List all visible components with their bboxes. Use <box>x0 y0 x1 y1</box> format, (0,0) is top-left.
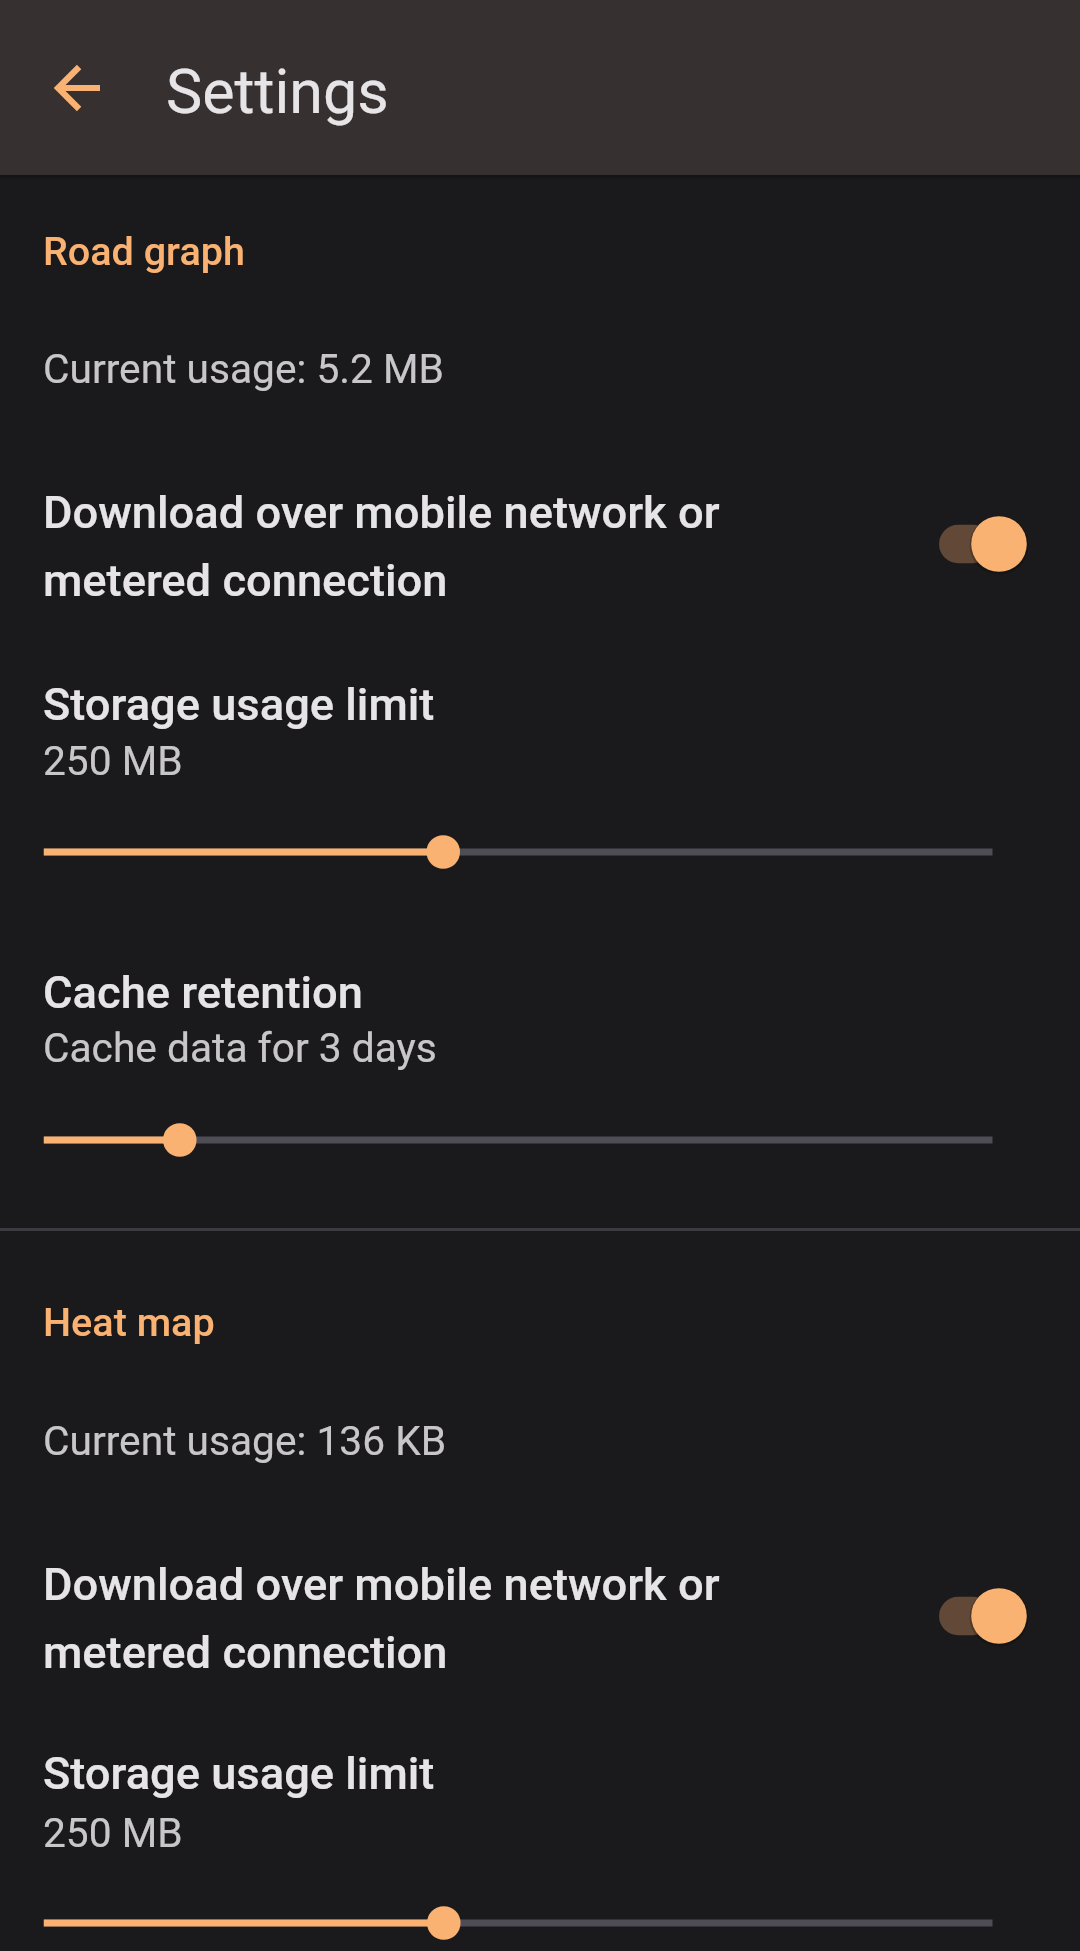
staticText: Current usage: 136 KB <box>43 1416 447 1465</box>
staticText: 250 MB <box>43 736 183 785</box>
staticText: Storage usage limit <box>43 1736 435 1804</box>
button[interactable]: Download over mobile network or metered … <box>933 1568 1045 1664</box>
staticText: Download over mobile network or metered … <box>43 1547 748 1683</box>
staticText: Heat map <box>43 1298 215 1346</box>
button[interactable]: Cache retention slider <box>0 1110 1080 1170</box>
staticText: Download over mobile network or metered … <box>43 475 748 611</box>
button[interactable]: Download over mobile network or metered … <box>933 496 1045 592</box>
button[interactable]: Storage usage limit slider <box>0 1893 1080 1951</box>
staticText: Cache data for 3 days <box>43 1023 437 1072</box>
staticText: 250 MB <box>43 1808 183 1857</box>
staticText: Cache retention <box>43 955 363 1023</box>
button[interactable]: Navigate up <box>42 52 114 124</box>
staticText: Road graph <box>43 227 245 275</box>
staticText: Settings <box>166 56 389 128</box>
staticText: Storage usage limit <box>43 667 435 735</box>
button[interactable]: Storage usage limit slider <box>0 822 1080 882</box>
staticText: Current usage: 5.2 MB <box>43 344 444 393</box>
